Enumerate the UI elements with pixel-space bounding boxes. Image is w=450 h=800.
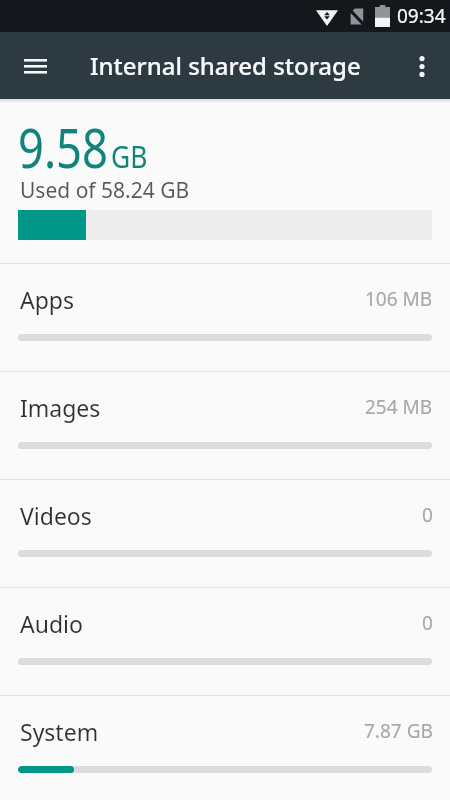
staticText: 106 MB [365, 286, 433, 312]
button[interactable]: Images [0, 371, 450, 479]
staticText: 7.87 GB [364, 718, 433, 744]
staticText: Apps [20, 284, 75, 315]
staticText: GB [111, 135, 148, 177]
staticText: Images [20, 392, 101, 423]
staticText: 09:34 [397, 3, 446, 29]
staticText: 0 [422, 502, 433, 528]
button[interactable] [402, 46, 442, 86]
button[interactable] [14, 45, 56, 87]
staticText: 0 [422, 610, 433, 636]
staticText: System [20, 716, 99, 747]
button[interactable]: System [0, 695, 450, 800]
button[interactable]: Apps [0, 263, 450, 371]
staticText: Audio [20, 608, 83, 639]
button[interactable]: Videos [0, 479, 450, 587]
staticText: Videos [20, 500, 92, 531]
staticText: Internal shared storage [90, 49, 361, 82]
button[interactable]: Audio [0, 587, 450, 695]
staticText: Used of 58.24 GB [20, 176, 190, 205]
staticText: 9.58 [18, 109, 109, 184]
staticText: 254 MB [365, 394, 433, 420]
